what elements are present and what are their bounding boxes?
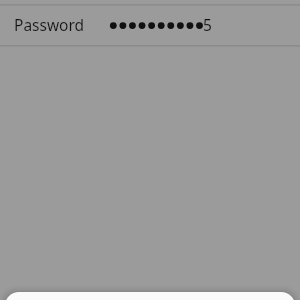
staticText: 5 [203, 14, 212, 35]
button[interactable]: Password [0, 5, 300, 45]
button[interactable]: Bottom sheet [0, 276, 300, 300]
staticText: Password [14, 14, 85, 35]
other: Hidden password [109, 18, 204, 34]
